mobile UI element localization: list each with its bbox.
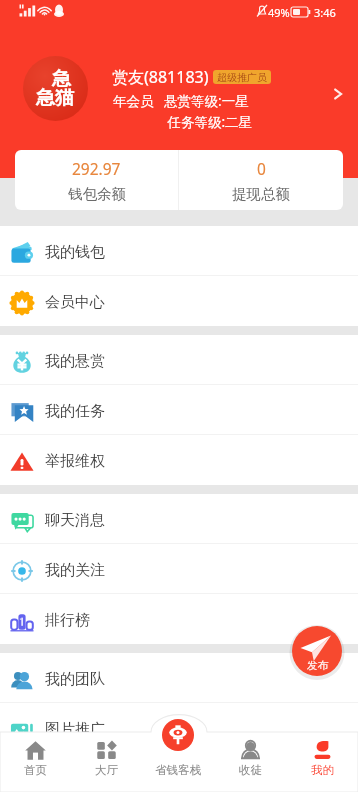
button[interactable]: Avatar bbox=[23, 56, 88, 121]
button[interactable]: 首页 bbox=[0, 719, 71, 792]
button[interactable]: 会员中心 bbox=[0, 276, 358, 326]
staticText: 3:46 bbox=[314, 5, 336, 20]
staticText: 发布 bbox=[307, 659, 328, 672]
staticText: 292.97 bbox=[72, 158, 121, 179]
staticText: 收徒 bbox=[239, 763, 262, 777]
staticText: 急猫 bbox=[36, 86, 74, 110]
button[interactable]: 排行榜 bbox=[0, 594, 358, 644]
button[interactable]: 发布 bbox=[292, 626, 342, 676]
staticText: 聊天消息 bbox=[45, 511, 105, 530]
staticText: 我的关注 bbox=[45, 561, 105, 580]
button[interactable]: 我的任务 bbox=[0, 385, 358, 435]
staticText: 会员中心 bbox=[45, 293, 105, 312]
staticText: 我的团队 bbox=[45, 670, 105, 689]
staticText: 我的任务 bbox=[45, 402, 105, 421]
staticText: 大厅 bbox=[95, 763, 118, 777]
button[interactable]: 举报维权 bbox=[0, 435, 358, 485]
button[interactable]: 聊天消息 bbox=[0, 494, 358, 544]
staticText: 49% bbox=[268, 5, 290, 20]
staticText: 首页 bbox=[24, 763, 47, 777]
button[interactable]: 292.97 bbox=[15, 150, 178, 210]
button[interactable]: 我的钱包 bbox=[0, 226, 358, 276]
staticText: 年会员 悬赏等级:一星 bbox=[113, 92, 249, 110]
button[interactable]: 省钱客栈 bbox=[142, 719, 214, 792]
staticText: 急 bbox=[52, 67, 71, 91]
staticText: 省钱客栈 bbox=[155, 763, 201, 777]
staticText: 排行榜 bbox=[45, 611, 90, 630]
staticText: 0 bbox=[257, 158, 266, 179]
button[interactable]: 我的 bbox=[286, 719, 358, 792]
button[interactable]: 0 bbox=[179, 150, 343, 210]
button[interactable]: 我的关注 bbox=[0, 544, 358, 594]
staticText: 任务等级:二星 bbox=[113, 113, 252, 131]
staticText: 钱包余额 bbox=[68, 185, 126, 203]
staticText: 提现总额 bbox=[232, 185, 290, 203]
button[interactable]: 我的悬赏 bbox=[0, 335, 358, 385]
staticText: 赏友(881183) bbox=[112, 66, 209, 88]
button[interactable]: 图片推广 bbox=[0, 703, 358, 753]
staticText: 举报维权 bbox=[45, 452, 105, 471]
staticText: 我的 bbox=[311, 763, 334, 777]
button[interactable]: 大厅 bbox=[71, 719, 142, 792]
staticText: 超级推广员 bbox=[217, 71, 267, 84]
button[interactable]: More profile details bbox=[326, 82, 350, 106]
staticText: 图片推广 bbox=[45, 720, 105, 739]
button[interactable]: 收徒 bbox=[214, 719, 286, 792]
staticText: 我的钱包 bbox=[45, 243, 105, 262]
staticText: 我的悬赏 bbox=[45, 352, 105, 371]
button[interactable]: 我的团队 bbox=[0, 653, 358, 703]
